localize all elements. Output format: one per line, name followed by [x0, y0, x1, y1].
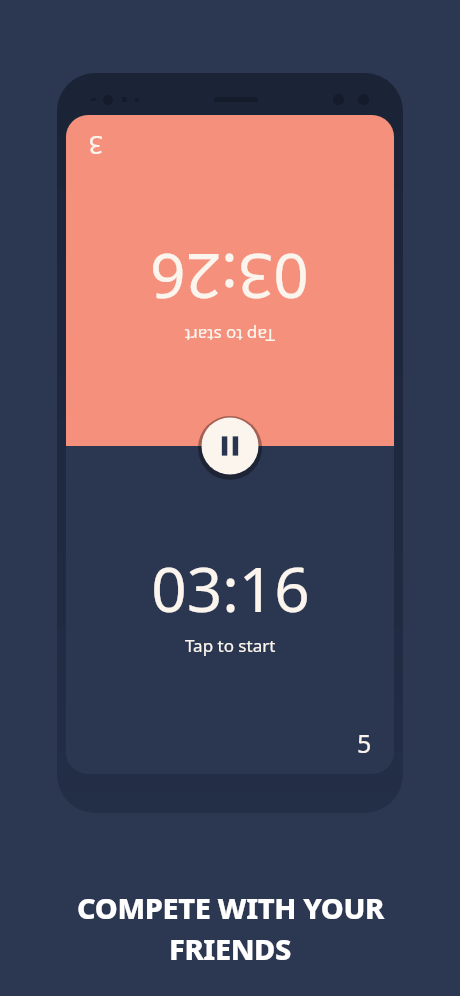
staticText: Tap to start [185, 634, 276, 657]
staticText: 03:16 [151, 546, 310, 630]
button[interactable]: Tap to start [66, 115, 394, 446]
staticText: 3 [88, 129, 103, 163]
button[interactable]: 03:16 [66, 446, 394, 774]
staticText: 5 [357, 726, 372, 760]
staticText: FRIENDS [169, 929, 291, 968]
staticText: COMPETE WITH YOUR [77, 888, 384, 927]
staticText: 03:26 [150, 236, 309, 320]
button[interactable]: Pause [198, 414, 262, 478]
staticText: Tap to start [184, 324, 275, 347]
